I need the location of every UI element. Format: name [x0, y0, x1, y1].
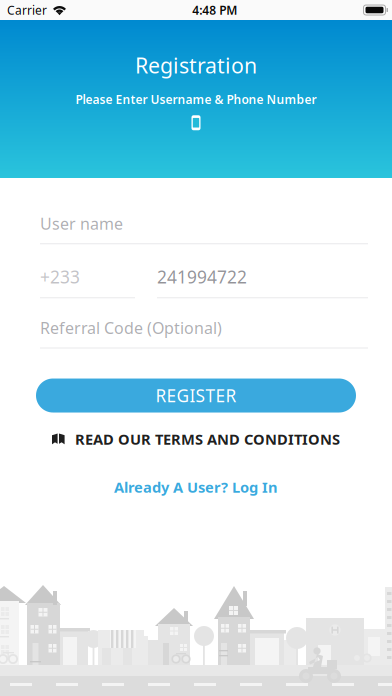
button[interactable]: READ OUR TERMS AND CONDITIONS — [0, 429, 392, 448]
staticText: 241994722 — [157, 265, 247, 288]
staticText: READ OUR TERMS AND CONDITIONS — [75, 429, 340, 449]
staticText: User name — [40, 213, 123, 234]
staticText: +233 — [40, 265, 80, 288]
staticText: Already A User? Log In — [114, 477, 278, 497]
staticText: Registration — [135, 51, 257, 79]
staticText: 4:48 PM — [192, 2, 237, 18]
button[interactable]: REGISTER — [36, 378, 356, 412]
staticText: Please Enter Username & Phone Number — [75, 91, 316, 107]
button[interactable]: Already A User? Log In — [0, 477, 392, 496]
staticText: Referral Code (Optional) — [40, 317, 222, 338]
staticText: REGISTER — [155, 384, 236, 407]
staticText: Carrier — [7, 2, 47, 18]
